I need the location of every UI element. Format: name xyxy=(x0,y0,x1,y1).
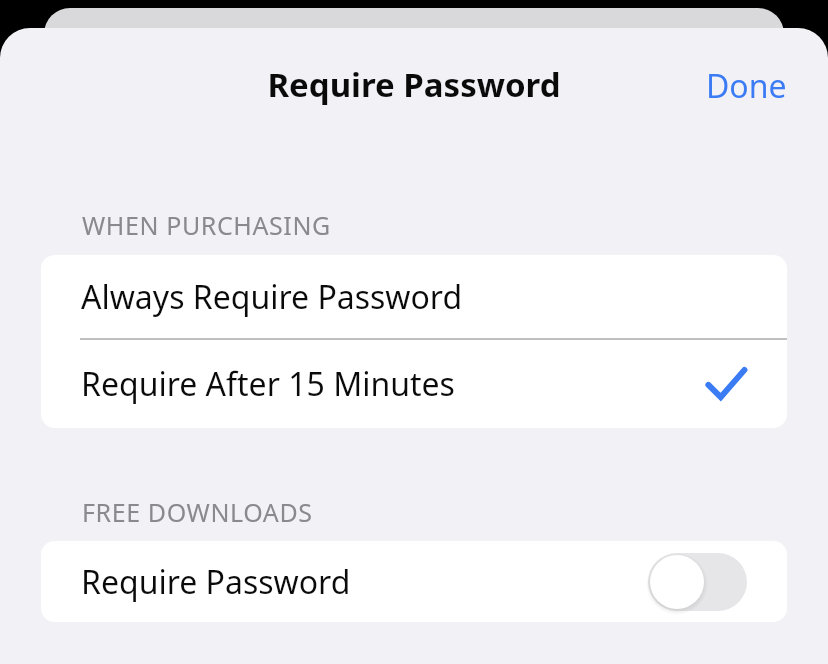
staticText: WHEN PURCHASING xyxy=(82,208,331,242)
button[interactable]: Done xyxy=(687,56,805,116)
staticText: Require After 15 Minutes xyxy=(81,362,455,406)
staticText: Always Require Password xyxy=(81,275,463,319)
button[interactable]: Require After 15 Minutes xyxy=(41,340,787,428)
staticText: Done xyxy=(706,64,787,108)
button[interactable]: Require Password xyxy=(41,541,787,622)
staticText: Require Password xyxy=(0,62,828,108)
button[interactable]: Require Password toggle xyxy=(648,553,747,611)
staticText: FREE DOWNLOADS xyxy=(82,495,313,529)
button[interactable]: Always Require Password xyxy=(41,255,787,338)
staticText: Require Password xyxy=(81,560,351,604)
